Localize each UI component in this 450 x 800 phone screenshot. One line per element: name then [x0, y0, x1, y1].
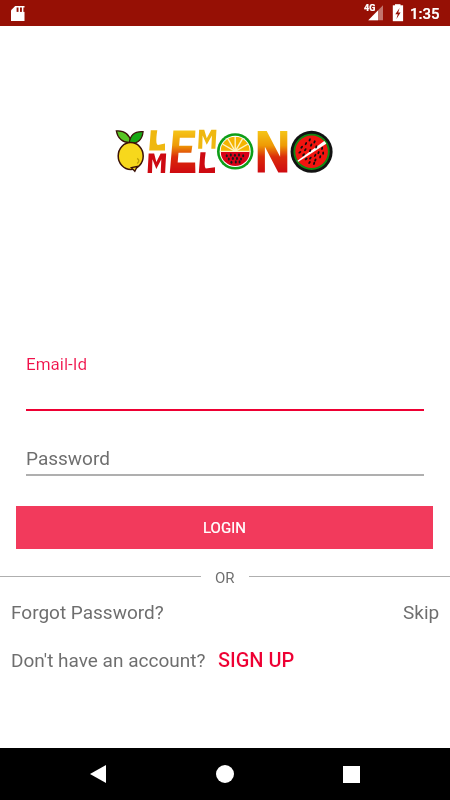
- staticText: LOGIN: [203, 519, 246, 537]
- button[interactable]: Password: [26, 447, 110, 469]
- button[interactable]: Email-Id: [26, 354, 87, 374]
- button[interactable]: SIGN UP: [218, 648, 295, 671]
- staticText: Email-Id: [26, 354, 87, 374]
- staticText: Forgot Password?: [11, 601, 164, 623]
- staticText: Skip: [403, 601, 440, 623]
- staticText: OR: [215, 569, 235, 587]
- button[interactable]: Recent apps: [325, 748, 377, 800]
- staticText: 4G: [364, 3, 376, 14]
- button[interactable]: Forgot Password?: [11, 601, 164, 623]
- button[interactable]: Home: [199, 748, 251, 800]
- staticText: SIGN UP: [218, 648, 295, 671]
- staticText: 1:35: [410, 5, 440, 23]
- staticText: Password: [26, 447, 110, 469]
- button[interactable]: LOGIN: [16, 506, 433, 549]
- staticText: Don't have an account?: [11, 649, 206, 671]
- button[interactable]: Back: [72, 748, 124, 800]
- button[interactable]: Skip: [403, 601, 440, 623]
